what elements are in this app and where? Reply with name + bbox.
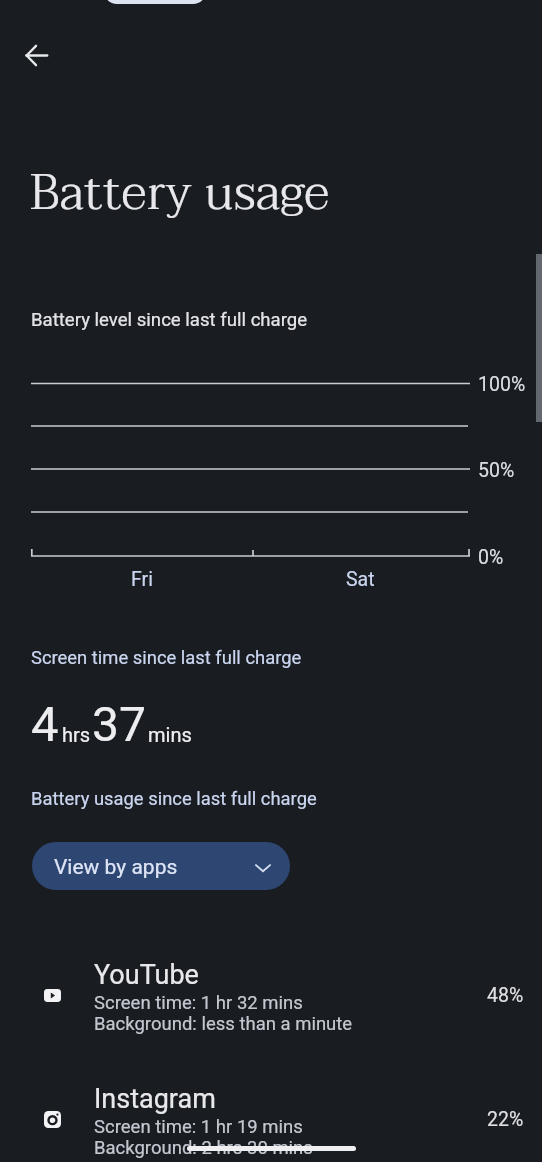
staticText: 4 [31, 696, 59, 753]
staticText: 0% [478, 546, 504, 569]
staticText: Background: 2 hrs 30 mins [94, 1137, 313, 1159]
staticText: 100% [478, 373, 526, 396]
staticText: 37 [92, 696, 146, 752]
staticText: Battery level since last full charge [31, 309, 308, 331]
staticText: 50% [478, 459, 515, 482]
staticText: 48% [487, 984, 524, 1007]
staticText: Screen time: 1 hr 19 mins [94, 1116, 303, 1138]
staticText: Screen time since last full charge [31, 647, 302, 669]
staticText: hrs [62, 723, 91, 746]
staticText: Sat [346, 568, 375, 591]
staticText: Screen time: 1 hr 32 mins [94, 992, 303, 1014]
staticText: YouTube [94, 959, 199, 991]
staticText: Battery usage since last full charge [31, 788, 317, 810]
staticText: Background: less than a minute [94, 1013, 353, 1035]
staticText: Instagram [94, 1083, 216, 1115]
button[interactable]: YouTube [0, 959, 542, 1041]
staticText: 22% [487, 1108, 524, 1131]
staticText: View by apps [54, 855, 178, 880]
button[interactable]: View by apps [32, 842, 290, 890]
staticText: mins [148, 723, 192, 746]
staticText: Battery usage [30, 150, 330, 235]
staticText: Fri [131, 568, 153, 591]
button[interactable]: Back [14, 33, 59, 78]
button[interactable]: Instagram [0, 1083, 542, 1162]
